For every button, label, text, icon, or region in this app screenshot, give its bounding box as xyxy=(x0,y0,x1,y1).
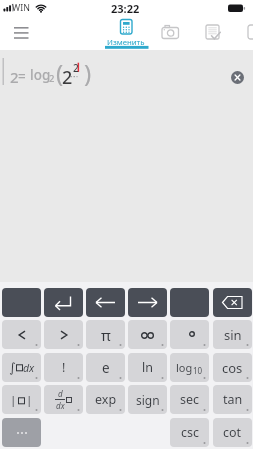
button[interactable]: | xyxy=(2,385,41,414)
staticText: 2 xyxy=(73,61,79,75)
staticText: exp xyxy=(95,391,117,408)
staticText: cot xyxy=(223,424,242,441)
button[interactable]: ln xyxy=(128,353,167,382)
button[interactable] xyxy=(128,288,167,317)
button[interactable] xyxy=(200,20,226,48)
button[interactable]: csc xyxy=(170,418,209,447)
button[interactable] xyxy=(44,288,83,317)
button[interactable]: sec xyxy=(170,385,209,414)
staticText: dx xyxy=(56,400,65,411)
button[interactable]: ∫ xyxy=(2,353,41,382)
staticText: sec xyxy=(180,391,200,408)
button[interactable]: Изменить xyxy=(103,18,150,50)
staticText: ln xyxy=(142,359,153,376)
button[interactable] xyxy=(8,20,38,48)
staticText: ( xyxy=(56,56,64,89)
button[interactable] xyxy=(128,320,167,349)
staticText: | xyxy=(10,392,17,408)
button[interactable]: tan xyxy=(213,385,252,414)
button[interactable] xyxy=(158,20,184,48)
staticText: sin xyxy=(224,326,242,344)
button[interactable] xyxy=(44,320,83,349)
staticText: ! xyxy=(62,359,66,376)
staticText: 10 xyxy=(193,365,203,376)
staticText: d xyxy=(58,388,63,399)
button[interactable]: π xyxy=(86,320,125,349)
staticText: tan xyxy=(223,391,243,408)
staticText: cos xyxy=(222,359,243,377)
staticText: sign xyxy=(136,392,160,408)
button[interactable] xyxy=(2,320,41,349)
staticText: = xyxy=(18,67,26,85)
staticText: dx xyxy=(23,361,35,375)
button[interactable] xyxy=(231,71,244,84)
staticText: ∫ xyxy=(9,360,16,375)
button[interactable]: d xyxy=(44,385,83,414)
staticText: e xyxy=(102,359,110,377)
button[interactable]: cos xyxy=(213,353,252,382)
staticText: π xyxy=(101,325,111,345)
button[interactable]: sin xyxy=(213,320,252,349)
staticText: Изменить xyxy=(107,37,145,48)
staticText: log xyxy=(176,360,193,375)
staticText: 2 xyxy=(62,65,73,90)
staticText: 2 xyxy=(49,72,55,85)
button[interactable] xyxy=(170,288,209,317)
button[interactable] xyxy=(170,320,209,349)
button[interactable] xyxy=(213,288,252,317)
staticText: csc xyxy=(181,424,199,441)
staticText: log xyxy=(30,66,51,84)
button[interactable]: sign xyxy=(128,385,167,414)
button[interactable]: e xyxy=(86,353,125,382)
staticText: | xyxy=(26,392,33,408)
staticText: 2 xyxy=(10,67,19,87)
button[interactable]: log xyxy=(170,353,209,382)
staticText: 23:22 xyxy=(111,1,140,16)
button[interactable] xyxy=(2,288,41,317)
button[interactable] xyxy=(86,288,125,317)
staticText: WIN xyxy=(12,2,30,14)
button[interactable]: cot xyxy=(213,418,252,447)
button[interactable]: exp xyxy=(86,385,125,414)
staticText: ) xyxy=(84,56,92,89)
button[interactable] xyxy=(2,418,41,447)
button[interactable]: ! xyxy=(44,353,83,382)
